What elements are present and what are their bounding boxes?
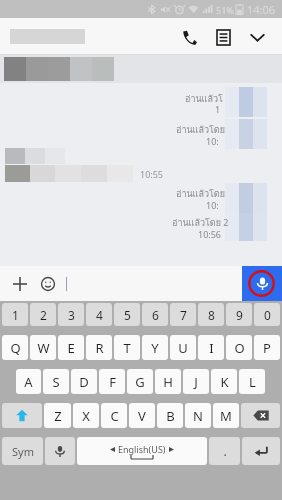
staticText: . [223, 443, 227, 459]
staticText: K [220, 373, 229, 391]
button[interactable]: H [155, 369, 181, 394]
staticText: O [234, 339, 245, 357]
staticText: 4 [96, 307, 103, 323]
button[interactable]: S [43, 369, 69, 394]
button[interactable]: E [58, 335, 84, 360]
button[interactable]: O [226, 335, 252, 360]
button[interactable]: Voice input [242, 266, 282, 301]
staticText: Q [10, 339, 21, 357]
button[interactable]: 2 [30, 303, 56, 326]
staticText: อ่านแล้วโ [185, 92, 223, 106]
button[interactable]: W [30, 335, 56, 360]
button[interactable]: Collapse [240, 20, 274, 54]
staticText: อ่านแล้วโดย [176, 187, 225, 201]
staticText: P [263, 339, 271, 357]
staticText: G [135, 373, 145, 391]
button[interactable]: T [114, 335, 140, 360]
button[interactable]: R [86, 335, 112, 360]
staticText: 1 [12, 307, 19, 323]
button[interactable]: A [16, 369, 41, 394]
button[interactable]: X [73, 403, 99, 428]
staticText: 9 [236, 307, 243, 323]
staticText: E [67, 339, 75, 357]
button[interactable]: Voice typing [45, 437, 75, 465]
button[interactable]: English(US) [77, 437, 207, 465]
staticText: F [109, 373, 116, 391]
button[interactable]: Enter [242, 437, 280, 465]
button[interactable]: Y [142, 335, 168, 360]
staticText: 5 [124, 307, 131, 323]
button[interactable]: V [129, 403, 155, 428]
staticText: M [220, 407, 232, 425]
staticText: 1 [215, 103, 221, 115]
button[interactable]: 4 [86, 303, 112, 326]
staticText: U [178, 339, 188, 357]
staticText: H [163, 373, 173, 391]
staticText: 0 [264, 307, 271, 323]
staticText: อ่านแล้วโดย 2 [172, 216, 229, 230]
button[interactable]: U [170, 335, 196, 360]
staticText: S [52, 373, 60, 391]
button[interactable]: Sym [2, 437, 43, 465]
staticText: Z [54, 407, 62, 425]
button[interactable]: 0 [254, 303, 280, 326]
staticText: N [193, 407, 203, 425]
button[interactable]: 5 [114, 303, 140, 326]
staticText: A [24, 373, 33, 391]
button[interactable]: 8 [198, 303, 224, 326]
button[interactable]: C [101, 403, 127, 428]
staticText: J [194, 373, 198, 391]
staticText: 10:56 [198, 228, 222, 240]
button[interactable]: D [71, 369, 97, 394]
button[interactable]: Q [2, 335, 28, 360]
button[interactable]: I [198, 335, 224, 360]
button[interactable]: Menu [206, 20, 240, 54]
staticText: T [123, 339, 131, 357]
staticText: L [249, 373, 256, 391]
staticText: 51% [216, 4, 234, 16]
button[interactable]: G [127, 369, 153, 394]
button[interactable]: 7 [170, 303, 196, 326]
button[interactable]: Z [44, 403, 71, 428]
staticText: 14:06 [247, 2, 276, 17]
button[interactable]: F [99, 369, 125, 394]
button[interactable]: L [239, 369, 265, 394]
staticText: English(US) [118, 443, 166, 455]
staticText: 10: [206, 199, 219, 211]
button[interactable]: 6 [142, 303, 168, 326]
staticText: Sym [12, 444, 34, 459]
staticText: 10:55 [140, 168, 164, 180]
staticText: I [209, 339, 214, 357]
button[interactable]: 1 [2, 303, 28, 326]
staticText: 2 [40, 307, 47, 323]
staticText: W [37, 339, 50, 357]
staticText: R [95, 339, 104, 357]
button[interactable]: K [211, 369, 237, 394]
button[interactable]: B [157, 403, 183, 428]
button[interactable]: 9 [226, 303, 252, 326]
button[interactable]: Add [8, 272, 32, 296]
staticText: 10: [206, 135, 219, 147]
staticText: C [110, 407, 119, 425]
button[interactable]: J [183, 369, 209, 394]
staticText: Y [151, 339, 159, 357]
staticText: X [82, 407, 90, 425]
button[interactable]: Emoji [36, 272, 60, 296]
button[interactable]: Call [172, 20, 206, 54]
button[interactable]: P [254, 335, 280, 360]
staticText: B [166, 407, 175, 425]
staticText: 3 [68, 307, 75, 323]
staticText: 7 [180, 307, 187, 323]
staticText: อ่านแล้วโดย [176, 123, 225, 137]
staticText: 6 [152, 307, 159, 323]
button[interactable]: . [209, 437, 240, 465]
button[interactable]: M [213, 403, 239, 428]
button[interactable]: Backspace [241, 403, 280, 428]
button[interactable]: N [185, 403, 211, 428]
staticText: 8 [208, 307, 215, 323]
button[interactable]: Shift [2, 403, 42, 428]
staticText: D [79, 373, 89, 391]
button[interactable]: 3 [58, 303, 84, 326]
staticText: V [138, 407, 146, 425]
